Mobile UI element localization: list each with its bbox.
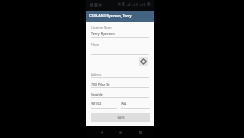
staticText: Address (91, 73, 102, 77)
staticText: Seattle (91, 92, 103, 97)
staticText: SAVE (117, 116, 125, 120)
staticText: 98102 (91, 101, 102, 106)
staticText: WA (121, 101, 127, 106)
button[interactable]: C338-AN3 Ryerson, Terry (86, 11, 154, 22)
staticText: Terry Ryerson (91, 31, 115, 36)
button[interactable]: SAVE (91, 113, 150, 122)
staticText: Customer Name (91, 26, 112, 30)
button[interactable]: Choose contact (139, 57, 148, 66)
staticText: Phone (91, 43, 100, 47)
button[interactable]: Home (115, 127, 125, 137)
staticText: 700 Pike St (91, 82, 110, 87)
staticText: C338-AN3 Ryerson, Terry (89, 13, 132, 18)
button[interactable]: Recent apps (135, 127, 145, 137)
button[interactable]: Back (96, 127, 106, 137)
